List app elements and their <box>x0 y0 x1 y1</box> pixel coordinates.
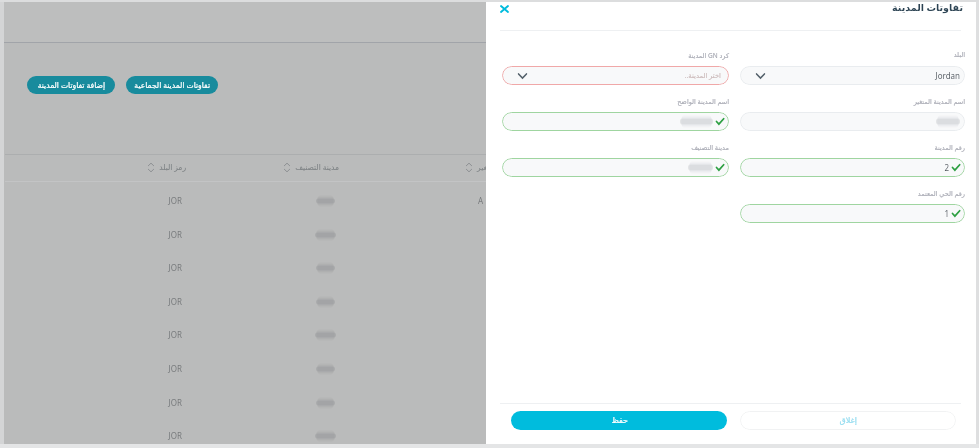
button[interactable] <box>502 158 729 177</box>
staticText: JOR <box>168 397 182 408</box>
staticText: كرد GN المدينة <box>502 51 729 66</box>
button[interactable]: 1 <box>740 204 965 223</box>
staticText: حفظ <box>611 416 628 425</box>
button[interactable]: Jordan <box>740 66 965 85</box>
staticText: تفاوتات المدينة الجماعية <box>134 80 210 90</box>
button[interactable]: 2 <box>740 158 965 177</box>
staticText: 2 <box>944 162 949 173</box>
staticText: اختر المدينة.. <box>684 71 721 80</box>
staticText: رمز البلد <box>159 162 186 172</box>
button[interactable] <box>502 112 729 131</box>
button[interactable]: رمز البلد <box>97 158 237 176</box>
staticText: JOR <box>168 363 182 374</box>
staticText: JOR <box>168 262 182 273</box>
staticText: JOR <box>168 195 182 206</box>
staticText: رقم المدينة <box>740 143 965 158</box>
staticText: تفاوتات المدينة <box>786 1 963 14</box>
staticText: Jordan <box>935 70 960 81</box>
staticText: A <box>477 195 483 206</box>
staticText: اسم المدينة المتغير <box>740 97 965 112</box>
button[interactable] <box>740 112 965 131</box>
button[interactable]: إغلاق <box>740 411 956 430</box>
staticText: JOR <box>168 329 182 340</box>
staticText: البلد <box>740 51 965 66</box>
staticText: مدينة التصنيف <box>502 143 729 158</box>
button[interactable]: إضافة تفاوتات المدينة <box>27 76 115 94</box>
staticText: 1 <box>944 208 949 219</box>
staticText: مدينة التصنيف <box>295 162 339 172</box>
button[interactable]: مدينة التصنيف <box>241 158 381 176</box>
staticText: المتغير <box>477 163 498 172</box>
button[interactable]: المتغير <box>412 158 552 176</box>
staticText: اسم المدينة الواضح <box>502 97 729 112</box>
staticText: JOR <box>168 430 182 441</box>
button[interactable]: اختر المدينة.. <box>502 66 729 85</box>
staticText: إغلاق <box>839 416 857 425</box>
staticText: إضافة تفاوتات المدينة <box>37 80 105 90</box>
staticText: رقم الحي المعتمد <box>740 189 965 204</box>
button[interactable]: تفاوتات المدينة الجماعية <box>126 76 218 94</box>
button[interactable]: Close <box>497 1 512 16</box>
staticText: JOR <box>168 296 182 307</box>
button[interactable]: حفظ <box>511 411 727 430</box>
staticText: JOR <box>168 229 182 240</box>
